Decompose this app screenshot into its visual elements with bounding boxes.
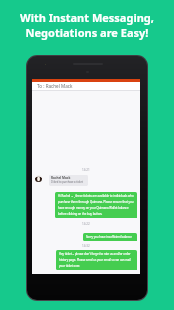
staticText: Hi Rachel ... , these tickets are availa… bbox=[58, 194, 135, 216]
staticText: 14:32 bbox=[82, 244, 90, 248]
staticText: To : Rachel Mack bbox=[37, 83, 140, 89]
button[interactable]: Sorry you have insufficient balance bbox=[83, 233, 137, 241]
staticText: 14:21 bbox=[82, 168, 90, 172]
button[interactable]: Hey ticket... please don't forget to rat… bbox=[56, 250, 137, 270]
button[interactable]: Rachel Mack bbox=[35, 175, 88, 186]
staticText: I liked to purchase a ticket bbox=[51, 180, 83, 184]
staticText: With Instant Messaging, Negotiations are… bbox=[0, 10, 174, 40]
button[interactable]: Hi Rachel ... , these tickets are availa… bbox=[55, 192, 137, 218]
staticText: Hey ticket... please don't forget to rat… bbox=[59, 252, 135, 268]
staticText: 14:22 bbox=[82, 222, 90, 226]
staticText: Sorry you have insufficient balance bbox=[86, 235, 132, 239]
staticText: Rachel Mack bbox=[51, 176, 71, 180]
